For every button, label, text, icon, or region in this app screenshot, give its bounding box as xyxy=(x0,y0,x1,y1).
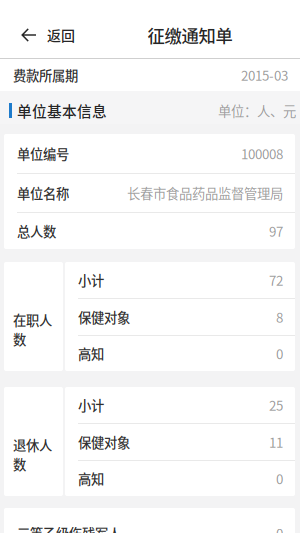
staticText: 小计 xyxy=(78,395,104,415)
staticText: 征缴通知单 xyxy=(147,22,232,48)
staticText: 100008 xyxy=(241,144,283,163)
staticText: 8 xyxy=(276,307,283,327)
staticText: 97 xyxy=(269,221,283,241)
staticText: 高知 xyxy=(78,469,104,488)
staticText: 2015-03 xyxy=(241,65,288,85)
staticText: 长春市食品药品监督管理局 xyxy=(127,183,283,203)
staticText: 保健对象 xyxy=(78,432,130,452)
staticText: 返回 xyxy=(47,25,75,45)
staticText: 0 xyxy=(276,344,283,363)
staticText: 0 xyxy=(276,523,283,533)
button[interactable]: 返回 xyxy=(0,12,87,58)
staticText: 小计 xyxy=(78,270,104,290)
staticText: 0 xyxy=(276,469,283,488)
staticText: 三等乙级伤残军人 xyxy=(17,523,121,533)
staticText: 25 xyxy=(269,395,283,415)
staticText: 高知 xyxy=(78,344,104,363)
staticText: 在职人数 xyxy=(13,310,52,349)
staticText: 总人数 xyxy=(17,221,56,241)
staticText: 单位编号 xyxy=(17,144,69,163)
staticText: 72 xyxy=(269,270,283,290)
staticText: 费款所属期 xyxy=(13,65,78,85)
staticText: 退休人数 xyxy=(13,435,52,474)
staticText: 保健对象 xyxy=(78,307,130,327)
staticText: 11 xyxy=(269,432,283,452)
staticText: 单位名称 xyxy=(17,183,69,203)
staticText: 单位：人、元 xyxy=(218,101,296,120)
staticText: 单位基本信息 xyxy=(17,100,107,121)
